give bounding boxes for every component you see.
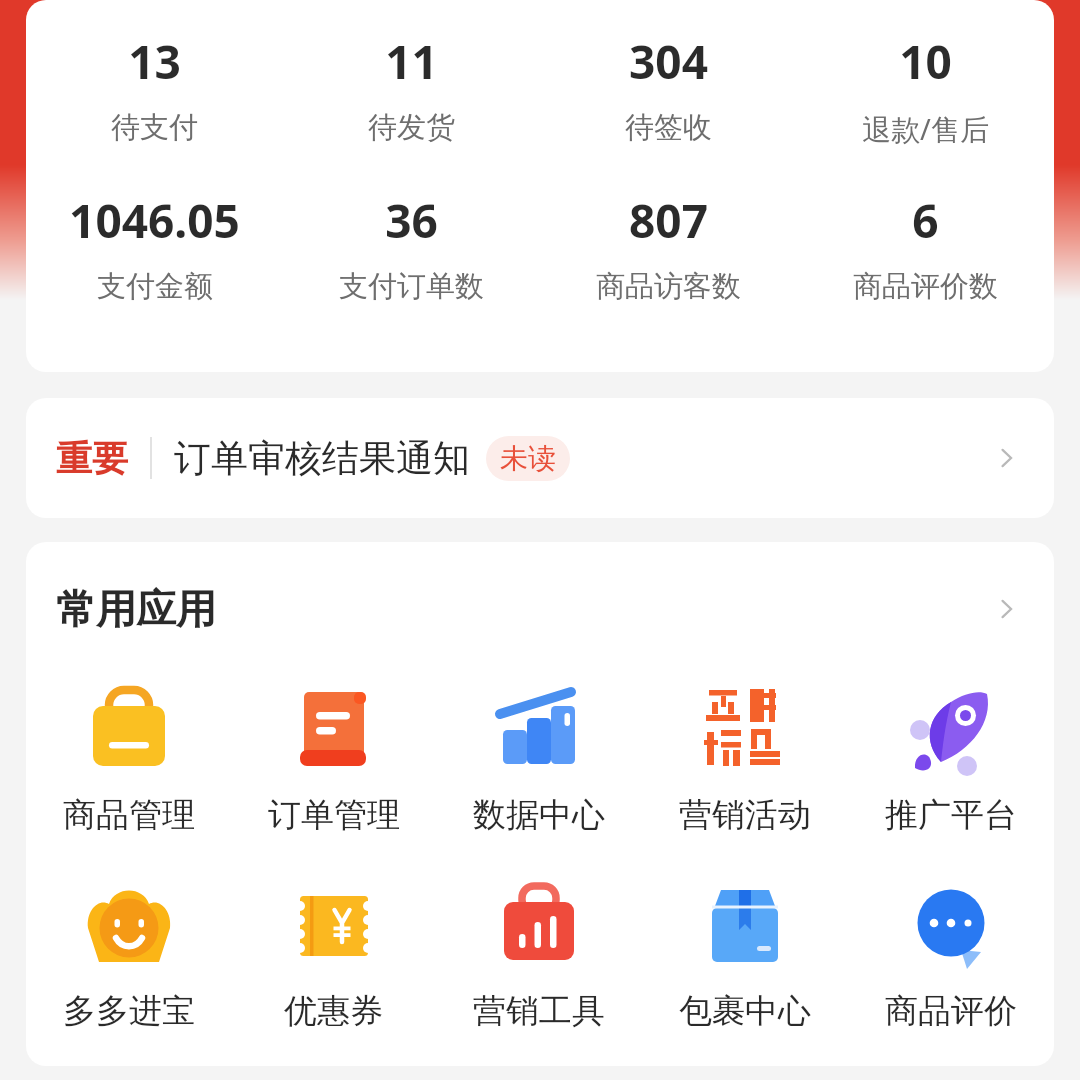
staticText: 多多进宝 <box>63 990 195 1032</box>
button[interactable]: 营销工具 <box>436 876 642 1032</box>
staticText: 营销工具 <box>473 990 605 1032</box>
staticText: 优惠券 <box>284 990 383 1032</box>
button[interactable]: 13 <box>26 30 283 146</box>
staticText: 订单管理 <box>268 794 400 836</box>
staticText: 304 <box>629 30 708 93</box>
button[interactable]: 重要 <box>26 398 1054 518</box>
button[interactable]: 常用应用 <box>26 542 1054 644</box>
staticText: 商品访客数 <box>596 268 741 305</box>
button[interactable]: 1046.05 <box>26 189 283 305</box>
staticText: 重要 <box>56 436 128 481</box>
button[interactable]: 36 <box>283 189 540 305</box>
staticText: 包裹中心 <box>679 990 811 1032</box>
button[interactable]: 11 <box>283 30 540 146</box>
staticText: 数据中心 <box>473 794 605 836</box>
staticText: 支付订单数 <box>339 268 484 305</box>
staticText: 待发货 <box>368 109 455 146</box>
staticText: 支付金额 <box>97 268 213 305</box>
staticText: 6 <box>912 189 939 252</box>
button[interactable]: 营销活动 <box>642 680 848 836</box>
staticText: 商品评价数 <box>853 268 998 305</box>
button[interactable]: 807 <box>540 189 797 305</box>
staticText: 订单审核结果通知 <box>174 435 470 482</box>
button[interactable]: 订单管理 <box>231 680 436 836</box>
button[interactable]: 304 <box>540 30 797 146</box>
staticText: 13 <box>128 30 181 93</box>
button[interactable]: 数据中心 <box>436 680 642 836</box>
staticText: 常用应用 <box>56 584 216 634</box>
button[interactable]: 商品评价 <box>848 876 1054 1032</box>
staticText: 待支付 <box>111 109 198 146</box>
staticText: 商品评价 <box>885 990 1017 1032</box>
button[interactable]: 多多进宝 <box>26 876 231 1032</box>
staticText: 36 <box>385 189 438 252</box>
staticText: 10 <box>899 30 952 93</box>
staticText: 807 <box>629 189 708 252</box>
staticText: 退款/售后 <box>862 109 989 149</box>
staticText: 待签收 <box>625 109 712 146</box>
button[interactable]: 10 <box>797 30 1054 149</box>
staticText: 商品管理 <box>63 794 195 836</box>
staticText: 未读 <box>500 441 556 476</box>
staticText: 推广平台 <box>885 794 1017 836</box>
button[interactable]: 优惠券 <box>231 876 436 1032</box>
other: 查看通知 <box>994 443 1024 473</box>
button[interactable]: 6 <box>797 189 1054 305</box>
staticText: 11 <box>385 30 438 93</box>
button[interactable]: 包裹中心 <box>642 876 848 1032</box>
staticText: 1046.05 <box>69 189 240 252</box>
button[interactable]: 商品管理 <box>26 680 231 836</box>
staticText: 营销活动 <box>679 794 811 836</box>
button[interactable]: 推广平台 <box>848 680 1054 836</box>
